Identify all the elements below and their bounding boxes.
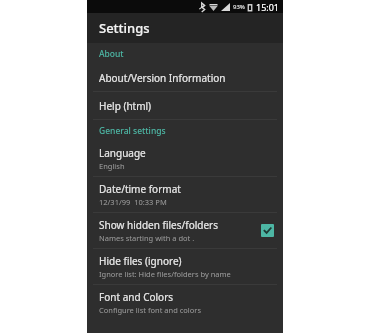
staticText: Help (html) xyxy=(99,99,152,113)
staticText: 12/31/99 10:33 PM xyxy=(99,197,167,207)
staticText: 93% xyxy=(233,3,245,11)
button[interactable]: About/Version Information xyxy=(87,64,283,91)
staticText: Date/time format xyxy=(99,182,181,196)
staticText: Configure list font and colors xyxy=(99,305,202,315)
button[interactable]: Hide files (ignore) xyxy=(87,249,283,284)
staticText: About xyxy=(99,48,124,60)
staticText: General settings xyxy=(99,125,166,137)
staticText: Hide files (ignore) xyxy=(99,254,182,268)
staticText: Names starting with a dot . xyxy=(99,233,195,243)
staticText: Show hidden files/folders xyxy=(99,218,218,232)
button[interactable]: Font and Colors xyxy=(87,285,283,320)
button[interactable]: Help (html) xyxy=(87,92,283,119)
staticText: 15:01 xyxy=(256,1,280,13)
staticText: Ignore list: Hide files/folders by name xyxy=(99,269,231,279)
staticText: Settings xyxy=(99,19,150,37)
button[interactable]: Show hidden files toggle xyxy=(261,224,274,237)
button[interactable]: Language xyxy=(87,141,283,176)
staticText: English xyxy=(99,161,125,171)
staticText: Language xyxy=(99,146,146,160)
button[interactable]: Date/time format xyxy=(87,177,283,212)
staticText: Font and Colors xyxy=(99,290,174,304)
staticText: About/Version Information xyxy=(99,71,226,85)
button[interactable]: Show hidden files/folders xyxy=(87,213,283,248)
